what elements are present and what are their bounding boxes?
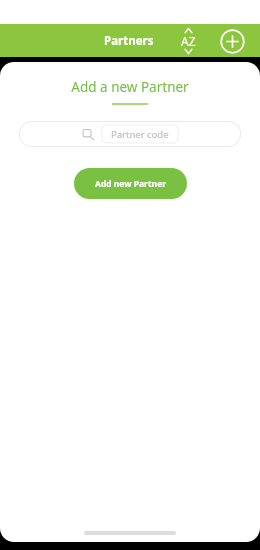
staticText: Add a new Partner [71, 78, 189, 96]
staticText: Partners [104, 33, 154, 49]
button[interactable]: Add new Partner [74, 168, 187, 199]
staticText: Add new Partner [95, 178, 167, 190]
button[interactable]: Partner code [19, 121, 241, 147]
button[interactable]: Add partner [216, 25, 248, 57]
staticText: Partner code [111, 128, 169, 141]
staticText: AZ [181, 33, 196, 49]
button[interactable]: Sort alphabetically [172, 25, 204, 57]
